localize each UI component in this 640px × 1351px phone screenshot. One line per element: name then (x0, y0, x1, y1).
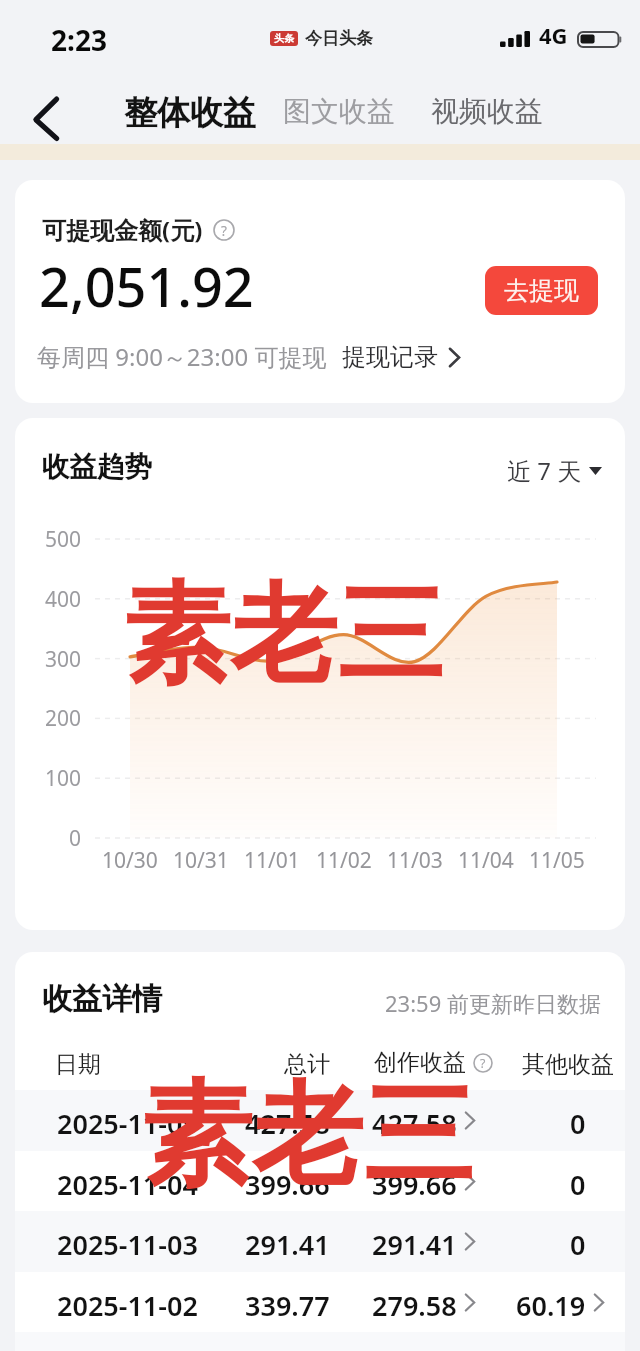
staticText: 291.41 (245, 1226, 330, 1263)
staticText: ? (480, 1055, 486, 1072)
staticText: 收益趋势 (42, 450, 152, 485)
staticText: 素老三 (123, 568, 444, 703)
staticText: 427.58 (245, 1105, 330, 1142)
button[interactable]: 2025-11-02 (15, 1272, 625, 1333)
button[interactable]: 2025-11-03 (15, 1211, 625, 1272)
staticText: 0 (570, 1226, 586, 1263)
staticText: 日期 (55, 1050, 101, 1079)
staticText: 收益详情 (42, 980, 162, 1018)
staticText: 11/05 (529, 846, 585, 875)
staticText: 头条 (274, 32, 294, 45)
staticText: 去提现 (504, 275, 579, 306)
staticText: 10/30 (102, 846, 158, 875)
staticText: 100 (45, 764, 82, 793)
staticText: 500 (45, 525, 82, 554)
staticText: 399.66 (245, 1166, 330, 1203)
staticText: 279.58 (372, 1287, 457, 1324)
staticText: 10/31 (173, 846, 229, 875)
button[interactable]: 图文收益 (283, 94, 395, 129)
staticText: 今日头条 (305, 28, 373, 49)
staticText: 60.19 (516, 1287, 586, 1324)
staticText: 399.66 (372, 1166, 457, 1203)
staticText: 300 (45, 645, 82, 674)
staticText: 整体收益 (124, 92, 256, 134)
button[interactable]: Back (14, 80, 74, 140)
staticText: 339.77 (245, 1287, 330, 1324)
button[interactable]: 2025-11-04 (15, 1151, 625, 1212)
staticText: 11/03 (387, 846, 443, 875)
staticText: 11/04 (458, 846, 514, 875)
staticText: 2025-11-03 (57, 1226, 198, 1263)
staticText: 427.58 (372, 1105, 457, 1142)
staticText: 2:23 (51, 21, 107, 59)
button[interactable]: 整体收益 (124, 92, 256, 134)
button[interactable]: 视频收益 (431, 94, 543, 129)
button[interactable]: 提现记录 (342, 342, 461, 372)
staticText: 其他收益 (522, 1050, 614, 1079)
button[interactable]: 近 7 天 (507, 454, 602, 487)
staticText: 2025-11-05 (57, 1105, 198, 1142)
button[interactable]: 去提现 (485, 266, 598, 315)
staticText: 200 (45, 704, 82, 733)
staticText: 图文收益 (283, 94, 395, 129)
staticText: 近 7 天 (507, 454, 582, 487)
staticText: 4G (539, 20, 568, 50)
staticText: 提现记录 (342, 342, 438, 372)
staticText: 291.41 (372, 1226, 457, 1263)
staticText: 每周四 9:00～23:00 可提现 (37, 340, 327, 373)
staticText: 11/01 (244, 846, 300, 875)
staticText: 0 (570, 1166, 586, 1203)
staticText: 400 (45, 585, 82, 614)
staticText: 2025-11-04 (57, 1166, 198, 1203)
staticText: 2,051.92 (39, 249, 254, 323)
staticText: 视频收益 (431, 94, 543, 129)
staticText: ? (221, 221, 227, 240)
staticText: 创作收益 (374, 1048, 466, 1077)
staticText: 总计 (284, 1050, 330, 1079)
button[interactable]: 2025-11-05 (15, 1090, 625, 1151)
staticText: 0 (570, 1105, 586, 1142)
staticText: 素老三 (141, 1066, 474, 1206)
staticText: 0 (69, 824, 82, 853)
staticText: 11/02 (316, 846, 372, 875)
staticText: 可提现金额(元) (42, 213, 203, 246)
staticText: 23:59 前更新昨日数据 (385, 988, 601, 1018)
staticText: 2025-11-02 (57, 1287, 198, 1324)
